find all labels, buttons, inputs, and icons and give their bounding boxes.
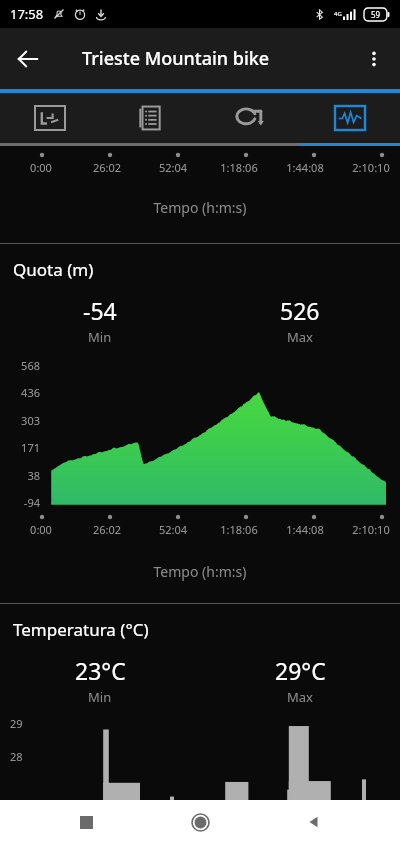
staticText: 2:10:10 — [344, 522, 398, 537]
button[interactable]: Details tab — [100, 93, 200, 143]
staticText: 23°C — [75, 655, 126, 686]
staticText: 0:00 — [14, 522, 68, 537]
staticText: 1:18:06 — [212, 160, 266, 175]
button[interactable]: Recent apps — [58, 800, 114, 844]
staticText: 52:04 — [146, 160, 200, 175]
staticText: Temperatura (°C) — [13, 618, 149, 641]
button[interactable]: More options — [348, 33, 400, 85]
button[interactable]: Back — [0, 31, 56, 87]
staticText: 526 — [280, 295, 320, 326]
staticText: Tempo (h:m:s) — [0, 562, 400, 581]
staticText: Max — [287, 328, 313, 346]
staticText: 171 — [10, 440, 40, 455]
staticText: Min — [88, 328, 112, 346]
staticText: 1:44:08 — [278, 522, 332, 537]
button[interactable]: Back — [286, 800, 342, 844]
button[interactable]: Home — [172, 800, 228, 844]
staticText: 0:00 — [14, 160, 68, 175]
staticText: 38 — [10, 468, 40, 483]
staticText: 26:02 — [80, 160, 134, 175]
button[interactable]: Laps tab — [200, 93, 300, 143]
staticText: 28 — [10, 749, 23, 764]
staticText: 303 — [10, 413, 40, 428]
button[interactable]: Charts tab — [300, 93, 400, 143]
staticText: 29 — [10, 716, 23, 731]
staticText: 4G — [334, 10, 342, 18]
staticText: Max — [287, 688, 313, 706]
staticText: Trieste Mountain bike — [82, 46, 270, 71]
staticText: -94 — [10, 495, 40, 510]
staticText: 26:02 — [80, 522, 134, 537]
staticText: 1:44:08 — [278, 160, 332, 175]
button[interactable]: Map tab — [0, 93, 100, 143]
staticText: 59 — [371, 9, 381, 20]
staticText: 436 — [10, 385, 40, 400]
staticText: -54 — [83, 295, 117, 326]
staticText: Quota (m) — [13, 258, 94, 281]
staticText: Tempo (h:m:s) — [0, 198, 400, 217]
staticText: 1:18:06 — [212, 522, 266, 537]
staticText: 2:10:10 — [344, 160, 398, 175]
staticText: 29°C — [275, 655, 326, 686]
staticText: 568 — [10, 358, 40, 373]
staticText: Min — [88, 688, 112, 706]
staticText: 52:04 — [146, 522, 200, 537]
staticText: 17:58 — [10, 5, 44, 23]
